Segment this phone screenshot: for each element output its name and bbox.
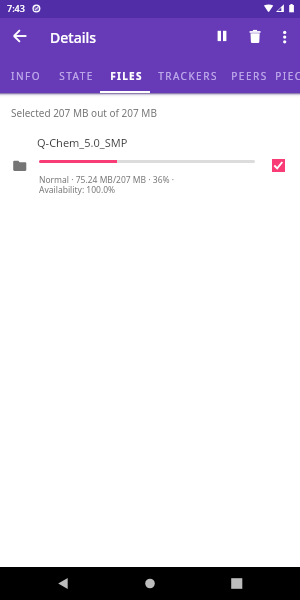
staticText: PEERS	[231, 69, 268, 83]
staticText: Selected 207 MB out of 207 MB	[11, 106, 157, 120]
button[interactable]: STATE	[50, 58, 100, 93]
button[interactable]: Recent apps	[217, 567, 257, 600]
staticText: INFO	[11, 69, 41, 83]
button[interactable]: Back	[43, 567, 83, 600]
button[interactable]: FILES	[100, 58, 150, 93]
staticText: PIECES	[275, 69, 300, 83]
staticText: Q-Chem_5.0_SMP	[37, 135, 128, 150]
button[interactable]: Delete	[239, 19, 271, 51]
staticText: Details	[50, 28, 97, 47]
button[interactable]: INFO	[0, 58, 50, 93]
button[interactable]: TRACKERS	[150, 58, 223, 93]
staticText: STATE	[59, 69, 94, 83]
button[interactable]: Pause	[206, 20, 238, 52]
button[interactable]: Home	[130, 567, 170, 600]
button[interactable]: File selected	[272, 159, 285, 172]
button[interactable]: More options	[272, 18, 300, 46]
staticText: TRACKERS	[158, 69, 218, 83]
button[interactable]: Q-Chem_5.0_SMP	[0, 125, 300, 195]
button[interactable]: PIECES	[274, 58, 300, 93]
staticText: 7:43	[7, 2, 25, 14]
button[interactable]: PEERS	[223, 58, 274, 93]
staticText: FILES	[110, 69, 143, 83]
button[interactable]: Back	[6, 22, 34, 50]
staticText: Normal · 75.24 MB/207 MB · 36% · Availab…	[39, 174, 175, 196]
